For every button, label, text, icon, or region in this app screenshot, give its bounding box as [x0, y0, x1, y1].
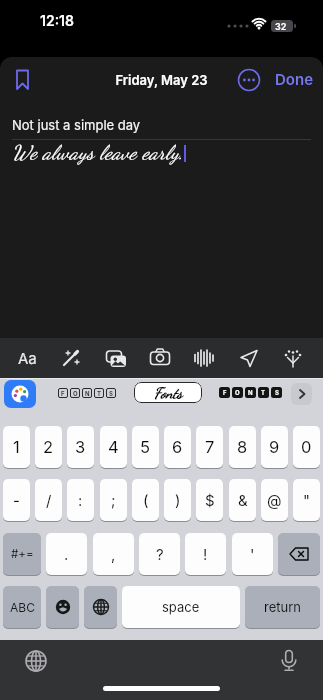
- staticText: $: [205, 491, 215, 509]
- button[interactable]: return: [245, 586, 320, 629]
- button[interactable]: 2: [35, 426, 62, 469]
- button[interactable]: [278, 533, 320, 576]
- button[interactable]: [84, 586, 117, 629]
- staticText: O: [73, 390, 78, 397]
- staticText: T: [261, 389, 266, 396]
- button[interactable]: @: [261, 479, 288, 522]
- button[interactable]: ,: [93, 533, 134, 576]
- staticText: /: [46, 491, 52, 509]
- button[interactable]: ;: [100, 479, 127, 522]
- staticText: S: [109, 390, 113, 397]
- staticText: (: [143, 491, 149, 509]
- staticText: :: [78, 491, 83, 509]
- button[interactable]: Fonts: [134, 382, 202, 403]
- staticText: T: [97, 390, 102, 397]
- button[interactable]: [46, 586, 79, 629]
- staticText: 7: [205, 437, 215, 457]
- button[interactable]: ": [293, 479, 320, 522]
- button[interactable]: /: [35, 479, 62, 522]
- button[interactable]: ABC: [3, 586, 41, 629]
- staticText: 3: [75, 437, 86, 457]
- staticText: 2: [43, 437, 54, 457]
- button[interactable]: Aa: [5, 338, 49, 378]
- staticText: We always leave early.: [12, 141, 184, 165]
- staticText: -: [13, 491, 20, 509]
- staticText: Not just a simple day: [12, 117, 141, 133]
- button[interactable]: 0: [293, 426, 320, 469]
- staticText: 8: [237, 437, 248, 457]
- staticText: 12:18: [40, 12, 74, 29]
- staticText: @: [267, 491, 282, 509]
- button[interactable]: [236, 67, 262, 93]
- button[interactable]: [8, 65, 40, 97]
- staticText: &: [238, 491, 248, 509]
- staticText: Done: [275, 70, 314, 88]
- staticText: 0: [301, 437, 312, 457]
- button[interactable]: ?: [139, 533, 180, 576]
- staticText: .: [64, 545, 69, 563]
- button[interactable]: [182, 338, 226, 378]
- button[interactable]: 5: [132, 426, 159, 469]
- button[interactable]: &: [229, 479, 256, 522]
- button[interactable]: ): [164, 479, 191, 522]
- button[interactable]: F: [219, 387, 282, 398]
- staticText: S: [275, 389, 279, 396]
- staticText: 1: [13, 437, 20, 457]
- staticText: N: [248, 389, 253, 396]
- staticText: ABC: [10, 600, 35, 615]
- button[interactable]: $: [196, 479, 223, 522]
- staticText: ': [250, 545, 255, 563]
- button[interactable]: .: [46, 533, 87, 576]
- button[interactable]: [270, 642, 308, 680]
- staticText: ;: [111, 491, 116, 509]
- staticText: F: [223, 389, 227, 396]
- button[interactable]: !: [185, 533, 226, 576]
- staticText: N: [85, 390, 90, 397]
- staticText: Aa: [18, 349, 37, 367]
- staticText: #+=: [11, 547, 34, 561]
- button[interactable]: [138, 338, 182, 378]
- staticText: 9: [269, 437, 280, 457]
- button[interactable]: Done: [270, 65, 319, 93]
- button[interactable]: [49, 338, 93, 378]
- button[interactable]: [291, 383, 312, 405]
- staticText: F: [61, 390, 65, 397]
- staticText: !: [203, 545, 208, 563]
- staticText: 4: [108, 437, 119, 457]
- button[interactable]: ': [232, 533, 273, 576]
- button[interactable]: #+=: [3, 533, 41, 576]
- staticText: Friday, May 23: [0, 72, 323, 88]
- staticText: 5: [140, 437, 151, 457]
- staticText: ?: [156, 545, 164, 563]
- button[interactable]: 8: [229, 426, 256, 469]
- staticText: ): [175, 491, 181, 509]
- staticText: space: [162, 599, 200, 615]
- staticText: 32: [275, 21, 287, 32]
- staticText: 6: [172, 437, 183, 457]
- staticText: Fonts: [154, 384, 183, 402]
- button[interactable]: [227, 338, 271, 378]
- button[interactable]: F: [58, 388, 116, 398]
- button[interactable]: (: [132, 479, 159, 522]
- button[interactable]: :: [67, 479, 94, 522]
- button[interactable]: [271, 338, 315, 378]
- button[interactable]: space: [122, 586, 240, 629]
- button[interactable]: 1: [3, 426, 30, 469]
- staticText: ": [303, 491, 310, 509]
- button[interactable]: 3: [67, 426, 94, 469]
- button[interactable]: 4: [100, 426, 127, 469]
- button[interactable]: -: [3, 479, 30, 522]
- button[interactable]: [94, 338, 138, 378]
- button[interactable]: 6: [164, 426, 191, 469]
- staticText: O: [235, 389, 240, 396]
- button[interactable]: 7: [196, 426, 223, 469]
- staticText: return: [264, 599, 301, 615]
- staticText: ,: [111, 545, 116, 563]
- button[interactable]: [17, 642, 55, 680]
- button[interactable]: [4, 380, 36, 408]
- button[interactable]: 9: [261, 426, 288, 469]
